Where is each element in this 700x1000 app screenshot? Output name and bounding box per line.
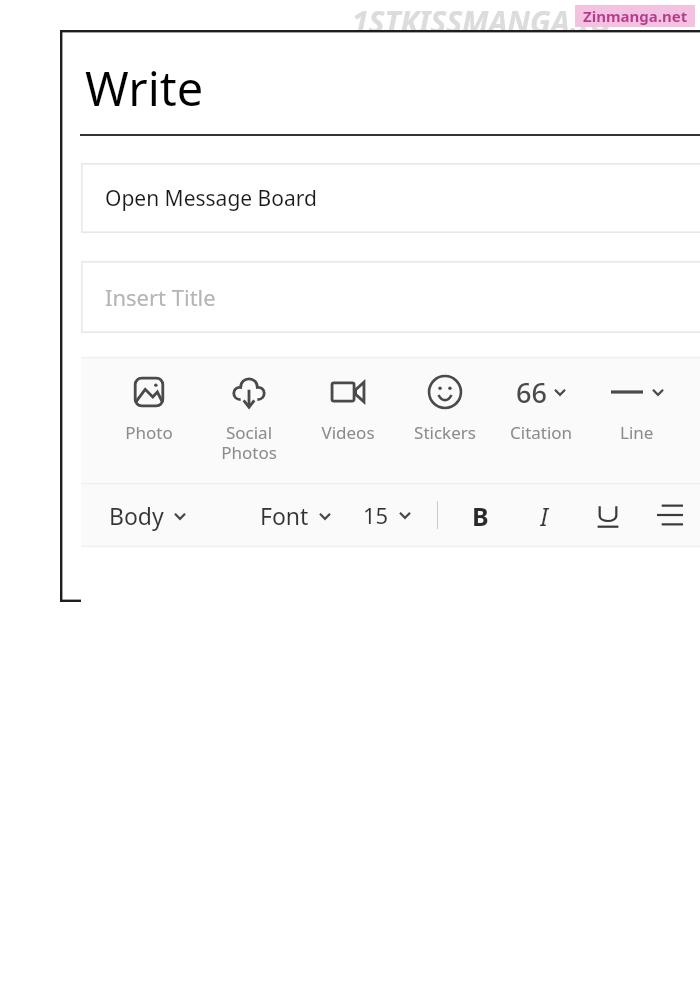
staticText: Font [260, 500, 309, 531]
button[interactable]: 66 [493, 371, 589, 444]
button[interactable]: Social Photos [199, 371, 299, 464]
button[interactable]: Font [260, 500, 331, 531]
other: Social Photos [230, 373, 268, 411]
button[interactable]: Expand [589, 371, 685, 444]
staticText: Videos [321, 421, 375, 444]
other: Expand [319, 510, 331, 522]
button[interactable]: Photo [99, 371, 199, 444]
button[interactable]: Bold [464, 499, 496, 531]
other: Expand [554, 386, 566, 398]
staticText: Write [85, 56, 204, 120]
button[interactable]: Strikethrough [654, 499, 686, 531]
button[interactable]: Stickers [397, 371, 493, 444]
staticText: 66 [516, 374, 547, 411]
button[interactable]: Videos [299, 371, 397, 444]
other: Expand [652, 386, 664, 398]
other: Videos [329, 373, 367, 411]
staticText: Photo [125, 421, 173, 444]
staticText: Zinmanga.net [583, 6, 688, 26]
other: Photo [130, 373, 168, 411]
staticText: Citation [510, 421, 573, 444]
button[interactable]: Insert Title [81, 261, 700, 333]
staticText: Body [109, 500, 164, 531]
other: Stickers [426, 373, 464, 411]
button[interactable]: Italic [528, 499, 560, 531]
button[interactable]: Body [109, 500, 186, 531]
staticText: Open Message Board [105, 184, 317, 213]
staticText: Line [620, 421, 654, 444]
button[interactable]: 15 [363, 500, 411, 530]
staticText: B [472, 499, 489, 531]
staticText: Insert Title [105, 282, 216, 312]
staticText: 15 [363, 500, 389, 530]
staticText: Social Photos [221, 421, 277, 464]
staticText: Stickers [414, 421, 476, 444]
staticText: 1STKISSMANGA.IO [352, 1, 612, 42]
button[interactable]: Underline [592, 499, 624, 531]
staticText: I [540, 499, 549, 531]
button[interactable]: Open Message Board [81, 163, 700, 233]
other: Expand [399, 509, 411, 521]
other: Expand [174, 510, 186, 522]
